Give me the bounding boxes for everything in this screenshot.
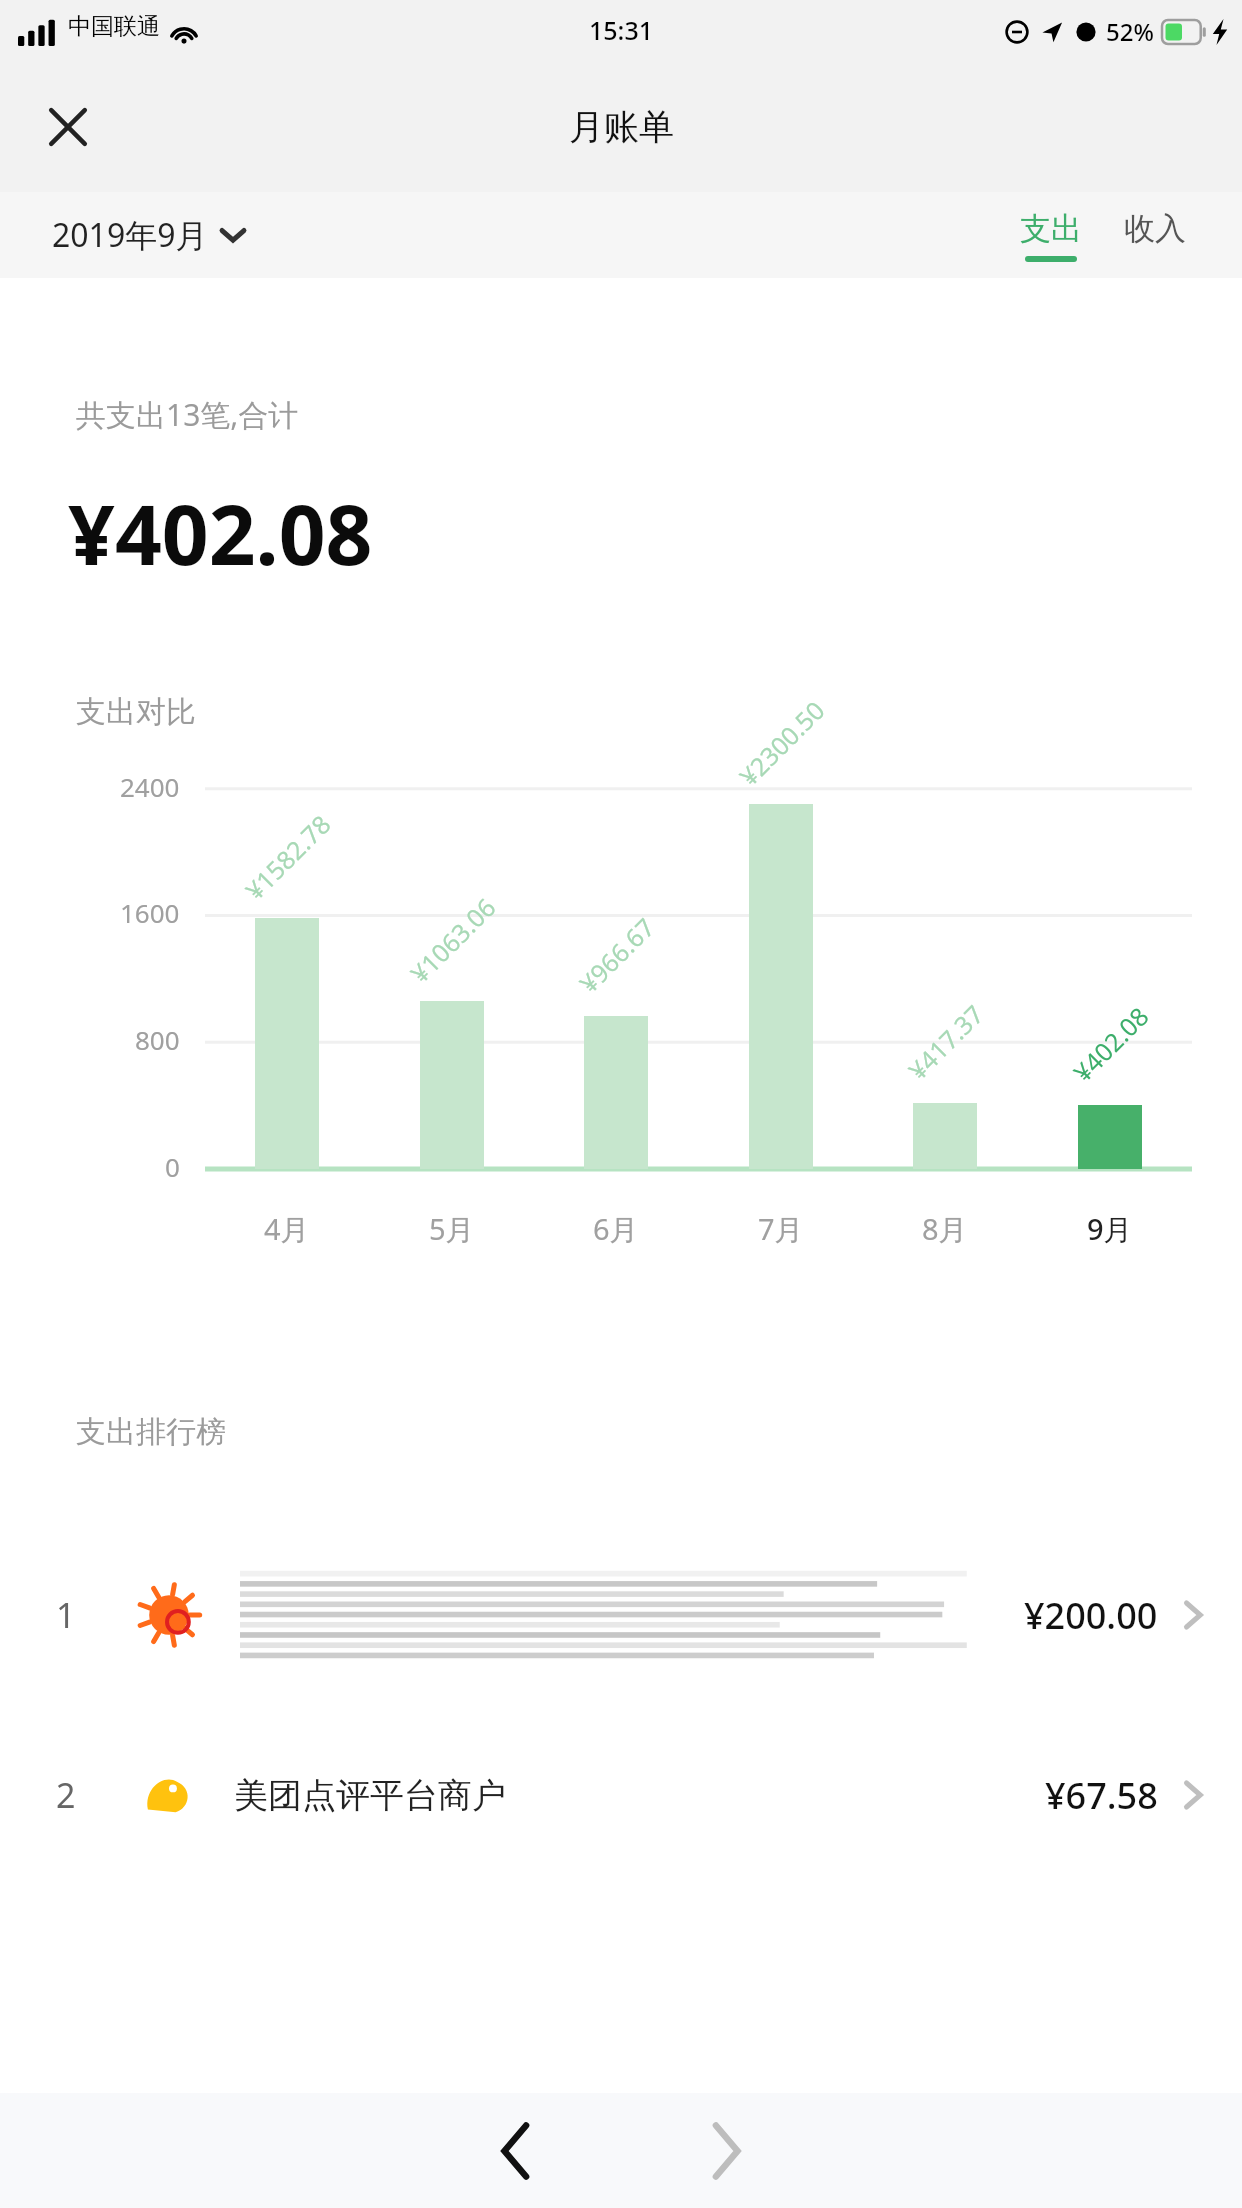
staticText: 美团点评平台商户 xyxy=(234,1774,506,1817)
staticText: ¥402.08 xyxy=(1066,999,1155,1089)
button[interactable]: Forward xyxy=(671,2096,781,2206)
staticText: 7月 xyxy=(758,1209,804,1249)
staticText: ¥966.67 xyxy=(572,910,661,1000)
staticText: ¥417.37 xyxy=(901,997,990,1087)
button[interactable]: Back xyxy=(461,2096,571,2206)
staticText: ¥1063.06 xyxy=(403,890,502,990)
button[interactable]: 收入 xyxy=(1114,205,1196,266)
staticText: 支出排行榜 xyxy=(76,1413,226,1451)
staticText: 8月 xyxy=(922,1209,968,1249)
staticText: 中国联通 xyxy=(68,12,160,41)
staticText: 2400 xyxy=(120,769,180,804)
staticText: 6月 xyxy=(593,1209,639,1249)
staticText: 0 xyxy=(165,1149,180,1184)
staticText: 月账单 xyxy=(569,105,674,149)
staticText: ¥2300.50 xyxy=(732,693,831,793)
staticText: 9月 xyxy=(1087,1209,1133,1249)
staticText: 15:31 xyxy=(589,13,654,47)
staticText: 2019年9月 xyxy=(52,213,208,257)
button[interactable]: 2 xyxy=(0,1705,1242,1885)
staticText: 52% xyxy=(1106,15,1154,48)
staticText: 支出对比 xyxy=(76,693,196,731)
staticText: 支出 xyxy=(1020,209,1082,248)
staticText: 1 xyxy=(56,1592,76,1638)
staticText: ¥67.58 xyxy=(1045,1771,1158,1820)
staticText: 共支出13笔,合计 xyxy=(76,394,299,435)
button[interactable]: 1 xyxy=(0,1525,1242,1705)
button[interactable]: 2019年9月 xyxy=(48,205,250,265)
staticText: ¥1582.78 xyxy=(238,807,337,907)
staticText: ¥200.00 xyxy=(1024,1591,1158,1640)
button[interactable]: 支出 xyxy=(1010,205,1092,266)
staticText: 收入 xyxy=(1124,209,1186,248)
staticText: 5月 xyxy=(429,1209,475,1249)
staticText: 4月 xyxy=(264,1209,310,1249)
staticText: 1600 xyxy=(120,895,180,930)
staticText: ¥402.08 xyxy=(68,477,373,589)
button[interactable]: Close xyxy=(34,93,102,161)
staticText: 800 xyxy=(135,1022,180,1057)
staticText: 2 xyxy=(56,1772,76,1818)
